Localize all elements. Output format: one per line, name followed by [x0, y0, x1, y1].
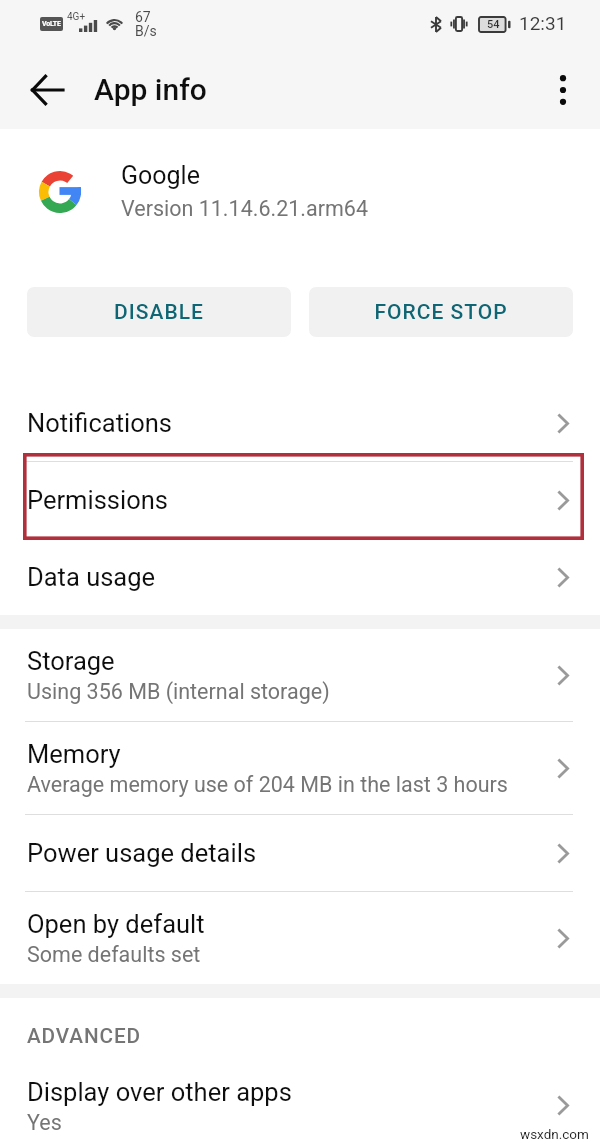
- staticText: 12:31: [519, 12, 567, 34]
- button[interactable]: Storage: [0, 629, 600, 721]
- staticText: VoLTE: [42, 20, 61, 28]
- staticText: ADVANCED: [27, 1024, 141, 1048]
- staticText: B/s: [135, 23, 157, 39]
- button[interactable]: Notifications: [0, 385, 600, 461]
- staticText: Memory: [27, 739, 121, 769]
- button[interactable]: Display over other apps: [0, 1066, 600, 1145]
- staticText: Display over other apps: [27, 1077, 292, 1107]
- staticText: 4G+: [67, 11, 86, 23]
- staticText: Open by default: [27, 909, 205, 939]
- staticText: Notifications: [27, 408, 172, 438]
- staticText: App info: [94, 72, 207, 107]
- button[interactable]: More options: [537, 64, 589, 116]
- staticText: Google: [121, 161, 200, 190]
- staticText: Version 11.14.6.21.arm64: [121, 196, 368, 221]
- staticText: Power usage details: [27, 838, 257, 868]
- button[interactable]: Data usage: [0, 539, 600, 615]
- staticText: wsxdn.com: [520, 1126, 589, 1142]
- staticText: Storage: [27, 646, 115, 676]
- staticText: DISABLE: [114, 300, 204, 325]
- button[interactable]: Memory: [0, 722, 600, 814]
- staticText: Average memory use of 204 MB in the last…: [27, 772, 508, 797]
- staticText: Using 356 MB (internal storage): [27, 679, 330, 704]
- staticText: Data usage: [27, 562, 156, 592]
- staticText: Some defaults set: [27, 942, 201, 967]
- button[interactable]: DISABLE: [27, 287, 291, 337]
- button[interactable]: FORCE STOP: [309, 287, 573, 337]
- staticText: Yes: [27, 1110, 62, 1135]
- button[interactable]: Open by default: [0, 892, 600, 984]
- staticText: 67: [135, 9, 151, 25]
- button[interactable]: Permissions: [0, 462, 600, 538]
- staticText: 54: [487, 18, 500, 31]
- staticText: Permissions: [27, 485, 168, 515]
- button[interactable]: Power usage details: [0, 815, 600, 891]
- staticText: FORCE STOP: [374, 300, 508, 325]
- button[interactable]: Back: [16, 59, 78, 121]
